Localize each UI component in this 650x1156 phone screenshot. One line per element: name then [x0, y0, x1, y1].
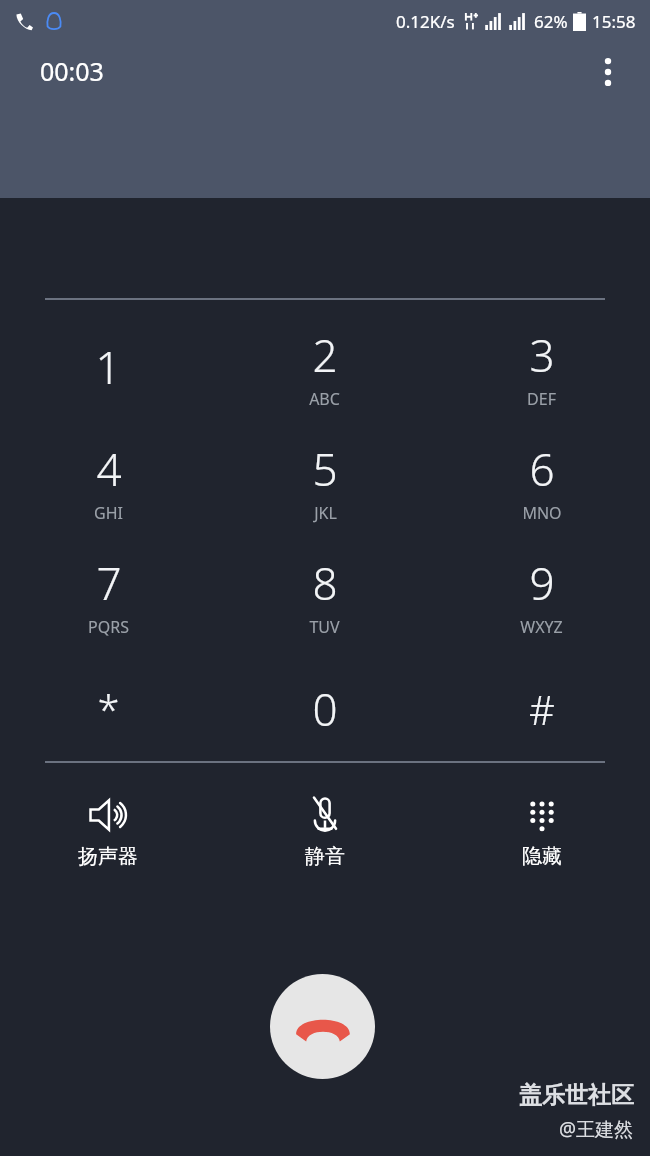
button[interactable]: 9 — [433, 538, 650, 652]
button[interactable]: 1 — [0, 310, 216, 424]
button[interactable]: Hide keypad — [433, 786, 650, 894]
staticText: # — [529, 682, 555, 736]
staticText: PQRS — [88, 616, 129, 638]
staticText: 3 — [529, 325, 555, 385]
button[interactable]: 3 — [433, 310, 650, 424]
button[interactable]: Speaker — [0, 786, 216, 894]
staticText: 9 — [529, 553, 555, 613]
staticText: 0 — [312, 679, 338, 739]
staticText: @王建然 — [559, 1116, 634, 1142]
staticText: 盖乐世社区 — [519, 1081, 634, 1110]
button[interactable]: 2 — [216, 310, 433, 424]
button[interactable]: More options — [584, 48, 632, 96]
staticText: 7 — [96, 553, 122, 613]
staticText: 8 — [312, 553, 338, 613]
staticText: MNO — [522, 502, 562, 524]
staticText: 0.12K/s — [396, 10, 455, 33]
button[interactable]: * — [0, 652, 216, 766]
staticText: 4 — [96, 439, 122, 499]
button[interactable]: Mute — [216, 786, 433, 894]
staticText: 00:03 — [40, 54, 104, 88]
staticText: DEF — [527, 388, 556, 410]
button[interactable]: 4 — [0, 424, 216, 538]
button[interactable]: End call — [270, 974, 375, 1079]
staticText: 62% — [534, 10, 568, 33]
staticText: 扬声器 — [78, 844, 138, 869]
button[interactable]: # — [433, 652, 650, 766]
staticText: 2 — [312, 325, 338, 385]
staticText: 5 — [312, 439, 338, 499]
staticText: 隐藏 — [522, 844, 562, 869]
staticText: 6 — [529, 439, 555, 499]
staticText: 15:58 — [592, 10, 636, 33]
button[interactable]: 6 — [433, 424, 650, 538]
staticText: * — [97, 682, 120, 736]
button[interactable]: 7 — [0, 538, 216, 652]
staticText: 静音 — [305, 844, 345, 869]
button[interactable]: 5 — [216, 424, 433, 538]
staticText: JKL — [314, 502, 337, 524]
staticText: ABC — [309, 388, 340, 410]
staticText: TUV — [309, 616, 340, 638]
button[interactable]: 0 — [216, 652, 433, 766]
staticText: GHI — [94, 502, 123, 524]
staticText: WXYZ — [520, 616, 563, 638]
button[interactable]: 8 — [216, 538, 433, 652]
staticText: 1 — [95, 337, 121, 397]
